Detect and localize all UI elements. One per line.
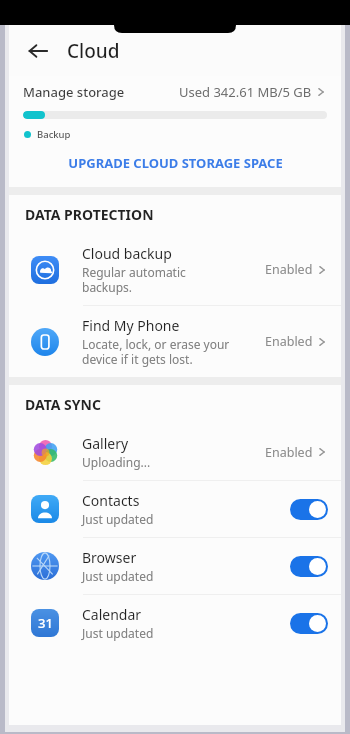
staticText: DATA SYNC [25,395,101,414]
staticText: Just updated [82,568,154,584]
staticText: Enabled [265,261,313,278]
staticText: Backup [37,128,71,141]
button[interactable]: Browser sync [290,556,328,577]
button[interactable]: Cloud backup [9,234,341,305]
staticText: Cloud [67,38,120,64]
staticText: Used 342.61 MB/5 GB [179,83,312,101]
staticText: 31 [38,614,53,632]
button[interactable]: Manage storage [9,76,341,108]
button[interactable]: Back [20,33,56,69]
button[interactable]: 31 [9,595,341,651]
button[interactable]: Contacts [9,481,341,537]
staticText: Enabled [265,444,313,461]
staticText: Browser [82,548,137,567]
staticText: Uploading... [82,454,151,470]
staticText: DATA PROTECTION [25,205,154,224]
staticText: Locate, lock, or erase your device if it… [82,336,230,367]
staticText: Cloud backup [82,244,172,263]
button[interactable]: Gallery [9,424,341,480]
staticText: Just updated [82,511,154,527]
staticText: Contacts [82,491,140,510]
staticText: Manage storage [23,83,125,101]
staticText: Find My Phone [82,316,180,335]
button[interactable]: Find My Phone [9,306,341,377]
staticText: Calendar [82,605,142,624]
button[interactable]: UPGRADE CLOUD STORAGE SPACE [9,141,341,185]
button[interactable]: Calendar sync [290,613,328,634]
staticText: Regular automatic backups. [82,264,186,295]
button[interactable]: Browser [9,538,341,594]
button[interactable]: Contacts sync [290,499,328,520]
staticText: Just updated [82,625,154,641]
staticText: UPGRADE CLOUD STORAGE SPACE [68,154,283,172]
staticText: Enabled [265,333,313,350]
staticText: Gallery [82,434,129,453]
